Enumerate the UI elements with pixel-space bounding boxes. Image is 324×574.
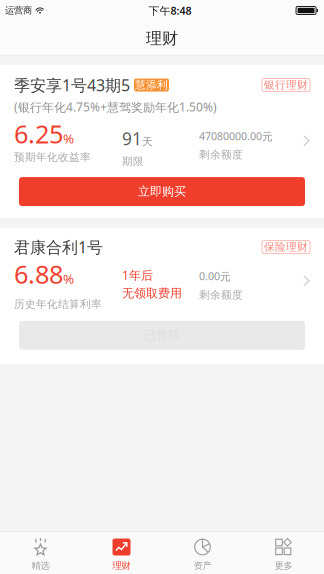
- staticText: 更多: [274, 560, 292, 571]
- staticText: 慧添利: [135, 78, 168, 91]
- staticText: 无领取费用: [122, 286, 182, 301]
- staticText: 元: [262, 130, 273, 143]
- staticText: %: [63, 130, 74, 147]
- staticText: 期限: [122, 155, 144, 168]
- staticText: 君康合利1号: [14, 236, 103, 258]
- staticText: 季安享1号43期5: [14, 74, 130, 96]
- staticText: 理财: [112, 560, 130, 571]
- staticText: %: [63, 270, 74, 287]
- staticText: 精选: [31, 560, 49, 571]
- staticText: 元: [220, 270, 231, 283]
- staticText: (银行年化4.75%+慧驾奖励年化1.50%): [14, 99, 217, 115]
- staticText: 立即购买: [138, 184, 186, 199]
- staticText: 47080000.00: [199, 129, 262, 143]
- staticText: 1年后: [122, 267, 153, 283]
- staticText: 6.88: [14, 257, 63, 291]
- button[interactable]: 理财: [81, 531, 162, 574]
- button[interactable]: 精选: [0, 531, 81, 574]
- staticText: 理财: [146, 29, 178, 48]
- staticText: 银行理财: [264, 78, 308, 91]
- button[interactable]: 立即购买: [19, 177, 305, 206]
- button[interactable]: 更多: [243, 531, 324, 574]
- staticText: 0.00: [199, 269, 220, 283]
- staticText: 已售罄: [144, 328, 180, 343]
- staticText: 91: [122, 127, 142, 150]
- staticText: 运营商: [5, 5, 32, 16]
- staticText: 保险理财: [264, 240, 308, 254]
- staticText: 剩余额度: [199, 148, 243, 161]
- button[interactable]: 资产: [162, 531, 243, 574]
- staticText: 剩余额度: [199, 288, 243, 301]
- staticText: 下午8:48: [148, 3, 191, 18]
- staticText: 资产: [193, 560, 211, 571]
- staticText: 6.25: [14, 117, 63, 150]
- staticText: 历史年化结算利率: [14, 298, 102, 311]
- staticText: 预期年化收益率: [14, 151, 91, 164]
- staticText: 天: [142, 135, 153, 148]
